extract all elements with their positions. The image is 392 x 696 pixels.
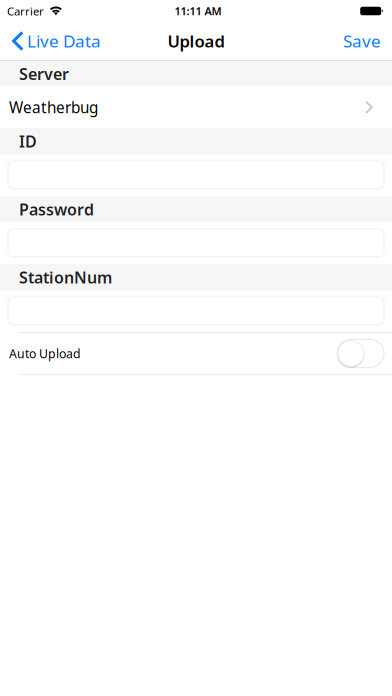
staticText: StationNum: [19, 266, 112, 288]
staticText: ID: [19, 130, 37, 152]
staticText: Save: [343, 29, 381, 53]
button[interactable]: Live Data: [0, 22, 109, 60]
button[interactable]: [8, 161, 384, 189]
button[interactable]: Weatherbug: [0, 86, 392, 128]
button[interactable]: [8, 229, 384, 257]
staticText: Auto Upload: [9, 345, 81, 362]
staticText: 11:11 AM: [174, 4, 221, 18]
staticText: Live Data: [27, 29, 101, 53]
staticText: Password: [19, 198, 94, 220]
staticText: Carrier: [7, 3, 44, 19]
staticText: Server: [19, 63, 69, 85]
button[interactable]: Auto Upload: [0, 333, 392, 374]
button[interactable]: Save: [332, 22, 392, 60]
button[interactable]: [8, 297, 384, 325]
staticText: Upload: [167, 30, 224, 52]
staticText: Weatherbug: [9, 97, 98, 118]
